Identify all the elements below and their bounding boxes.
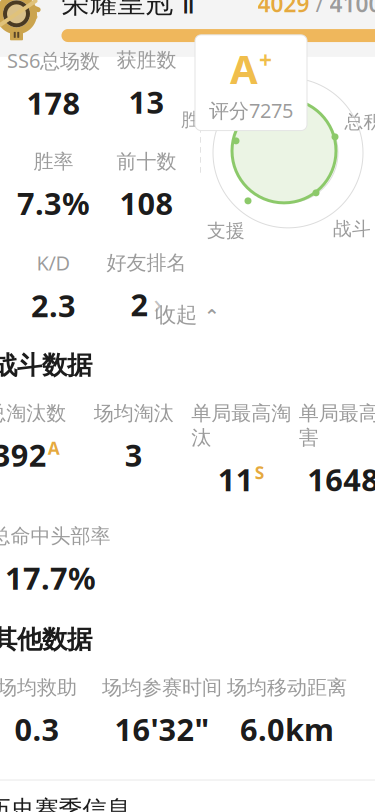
staticText: 总积分 bbox=[344, 110, 375, 133]
staticText: ⌃ bbox=[204, 306, 220, 327]
staticText: A bbox=[48, 436, 60, 459]
staticText: 场均淘汰 bbox=[94, 401, 174, 426]
staticText: 好友排名 bbox=[106, 250, 186, 275]
staticText: 2.3 bbox=[31, 285, 76, 326]
staticText: 392 bbox=[0, 434, 47, 475]
staticText: 胜率 bbox=[33, 149, 73, 174]
staticText: 总淘汰数 bbox=[0, 401, 66, 426]
staticText: 4100 bbox=[329, 0, 375, 18]
staticText: 支援 bbox=[207, 219, 245, 242]
staticText: 7.3% bbox=[17, 183, 90, 223]
staticText: 16'32" bbox=[114, 709, 209, 749]
staticText: 战斗 bbox=[333, 217, 371, 240]
staticText: 场均参赛时间 bbox=[102, 675, 222, 700]
staticText: › bbox=[153, 284, 162, 321]
staticText: 前十数 bbox=[116, 149, 176, 174]
button[interactable]: 历史赛季信息 bbox=[0, 780, 375, 812]
staticText: 获胜数 bbox=[116, 48, 176, 72]
staticText: 战斗数据 bbox=[0, 350, 92, 381]
staticText: 1648 bbox=[307, 459, 375, 500]
staticText: 6.0km bbox=[240, 709, 334, 749]
staticText: 总命中头部率 bbox=[0, 524, 110, 548]
staticText: 参赛 bbox=[267, 57, 305, 80]
staticText: 178 bbox=[26, 82, 80, 123]
staticText: 历史赛季信息 bbox=[0, 795, 130, 812]
staticText: 胜率 bbox=[181, 108, 219, 131]
staticText: S bbox=[255, 461, 265, 484]
staticText: 收起 bbox=[155, 302, 197, 328]
staticText: 2 bbox=[130, 284, 148, 325]
button[interactable]: 收起 bbox=[0, 294, 375, 336]
staticText: SS6总场数 bbox=[7, 47, 100, 74]
staticText: 17.7% bbox=[5, 557, 96, 598]
staticText: 108 bbox=[119, 183, 173, 223]
staticText: 11 bbox=[218, 459, 254, 500]
staticText: 场均移动距离 bbox=[227, 675, 347, 700]
staticText: 单局最高伤害 bbox=[299, 401, 375, 450]
staticText: 其他数据 bbox=[0, 624, 92, 655]
button[interactable]: 好友排名 bbox=[100, 250, 193, 325]
staticText: 场均救助 bbox=[0, 675, 77, 700]
staticText: K/D bbox=[36, 249, 70, 276]
staticText: 0.3 bbox=[14, 709, 59, 749]
staticText: / bbox=[309, 0, 329, 18]
staticText: A bbox=[230, 42, 258, 95]
staticText: + bbox=[259, 45, 272, 75]
staticText: 评分7275 bbox=[209, 97, 293, 124]
staticText: 13 bbox=[128, 81, 164, 122]
staticText: 单局最高淘汰 bbox=[191, 401, 291, 450]
staticText: 3 bbox=[125, 434, 143, 475]
staticText: 荣耀皇冠 Ⅱ bbox=[61, 0, 195, 20]
staticText: 4029 bbox=[257, 0, 309, 18]
